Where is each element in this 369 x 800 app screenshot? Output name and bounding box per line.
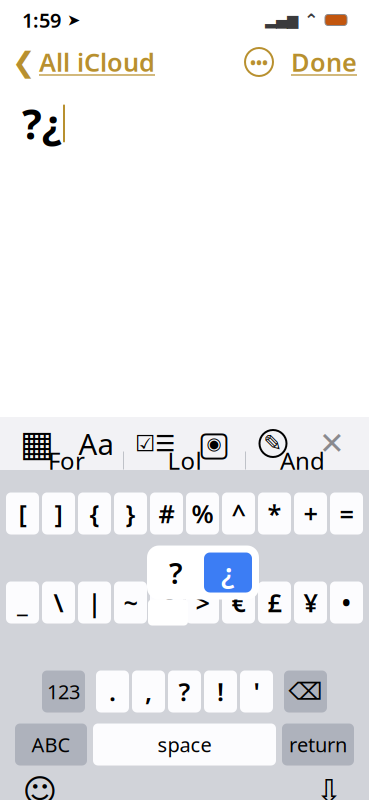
staticText: ?¿ xyxy=(22,96,62,151)
button[interactable]: return xyxy=(282,723,354,765)
staticText: # xyxy=(158,497,174,530)
staticText: > xyxy=(195,586,209,619)
staticText: ✎ xyxy=(263,431,282,456)
staticText: ? xyxy=(169,553,183,592)
button[interactable]: space xyxy=(93,723,276,765)
staticText: ^ xyxy=(231,497,245,530)
staticText: ⇩ xyxy=(315,773,342,800)
button[interactable]: _ xyxy=(6,581,39,623)
staticText: All iCloud xyxy=(39,45,155,79)
button[interactable]: > xyxy=(186,581,219,623)
button[interactable]: Camera xyxy=(192,421,236,465)
button[interactable]: Done xyxy=(273,45,357,79)
button[interactable]: £ xyxy=(258,581,291,623)
button[interactable]: ^ xyxy=(222,492,255,534)
staticText: ¿ xyxy=(221,553,235,592)
button[interactable]: + xyxy=(294,492,327,534)
button[interactable]: Dictate xyxy=(309,771,349,800)
staticText: Done xyxy=(291,45,357,79)
staticText: ~ xyxy=(123,586,137,619)
staticText: [ xyxy=(18,497,26,530)
staticText: \ xyxy=(53,586,63,619)
staticText: 1:59 xyxy=(22,7,61,33)
button[interactable]: { xyxy=(78,492,111,534)
staticText: ◉ xyxy=(206,434,221,453)
button[interactable]: ⌫ xyxy=(284,670,327,712)
staticText: ✕ xyxy=(319,426,345,461)
staticText: ⌫ xyxy=(288,678,322,705)
button[interactable]: ABC xyxy=(15,723,87,765)
button[interactable]: And xyxy=(246,437,359,483)
staticText: = xyxy=(339,497,353,530)
staticText: * xyxy=(267,497,281,530)
staticText: Lol xyxy=(167,445,201,476)
button[interactable]: For xyxy=(10,437,123,483)
button[interactable]: ❮ xyxy=(12,45,155,79)
button[interactable]: % xyxy=(186,492,219,534)
button[interactable]: Table xyxy=(15,421,59,465)
button[interactable]: ? xyxy=(168,670,201,712)
staticText: And xyxy=(280,445,325,476)
staticText: ⌃ xyxy=(298,10,325,30)
button[interactable]: ] xyxy=(42,492,75,534)
staticText: £ xyxy=(267,586,281,619)
button[interactable]: Lol xyxy=(124,437,245,483)
staticText: ' xyxy=(253,675,259,708)
button[interactable]: * xyxy=(258,492,291,534)
staticText: Aa xyxy=(78,424,113,463)
button[interactable]: \ xyxy=(42,581,75,623)
staticText: ▦ xyxy=(20,423,54,464)
button[interactable]: Checklist xyxy=(133,421,177,465)
staticText: ☑☰ xyxy=(135,431,175,456)
staticText: ? xyxy=(178,675,190,708)
staticText: ABC xyxy=(31,731,70,758)
button[interactable]: Emoji xyxy=(20,771,60,800)
button[interactable]: 123 xyxy=(42,670,85,712)
button[interactable]: = xyxy=(330,492,363,534)
staticText: ••• xyxy=(250,51,268,73)
staticText: return xyxy=(289,731,347,758)
staticText: % xyxy=(191,497,213,530)
staticText: + xyxy=(303,497,317,530)
staticText: ¥ xyxy=(303,586,317,619)
staticText: ❮ xyxy=(12,46,35,78)
staticText: 123 xyxy=(47,678,80,705)
button[interactable]: , xyxy=(132,670,165,712)
button[interactable]: } xyxy=(114,492,147,534)
button[interactable]: < xyxy=(150,581,183,623)
button[interactable]: More xyxy=(245,48,273,76)
button[interactable]: ~ xyxy=(114,581,147,623)
staticText: space xyxy=(157,731,211,758)
staticText: ▢ xyxy=(197,424,230,463)
button[interactable]: € xyxy=(222,581,255,623)
staticText: March 28, 2022 at 1:59 PM xyxy=(64,57,305,83)
staticText: } xyxy=(125,497,135,530)
staticText: ] xyxy=(54,497,62,530)
button[interactable]: . xyxy=(96,670,129,712)
staticText: , xyxy=(145,675,152,708)
button[interactable]: [ xyxy=(6,492,39,534)
button[interactable]: Close xyxy=(310,421,354,465)
button[interactable]: | xyxy=(78,581,111,623)
button[interactable]: ¥ xyxy=(294,581,327,623)
staticText: ☺ xyxy=(22,773,57,800)
staticText: { xyxy=(89,497,99,530)
button[interactable]: Markup xyxy=(251,421,295,465)
staticText: | xyxy=(87,586,101,619)
staticText: _ xyxy=(17,586,28,619)
staticText: € xyxy=(231,586,245,619)
button[interactable]: # xyxy=(150,492,183,534)
button[interactable]: ! xyxy=(204,670,237,712)
button[interactable]: ' xyxy=(240,670,273,712)
staticText: ! xyxy=(217,675,224,708)
staticText: . xyxy=(109,675,116,708)
staticText: • xyxy=(341,586,351,619)
staticText: < xyxy=(159,586,173,619)
staticText: For xyxy=(48,445,85,476)
button[interactable]: Format xyxy=(74,421,118,465)
button[interactable]: • xyxy=(330,581,363,623)
staticText: ➤ xyxy=(61,11,80,29)
staticText: ▂▄▆ xyxy=(265,12,298,28)
